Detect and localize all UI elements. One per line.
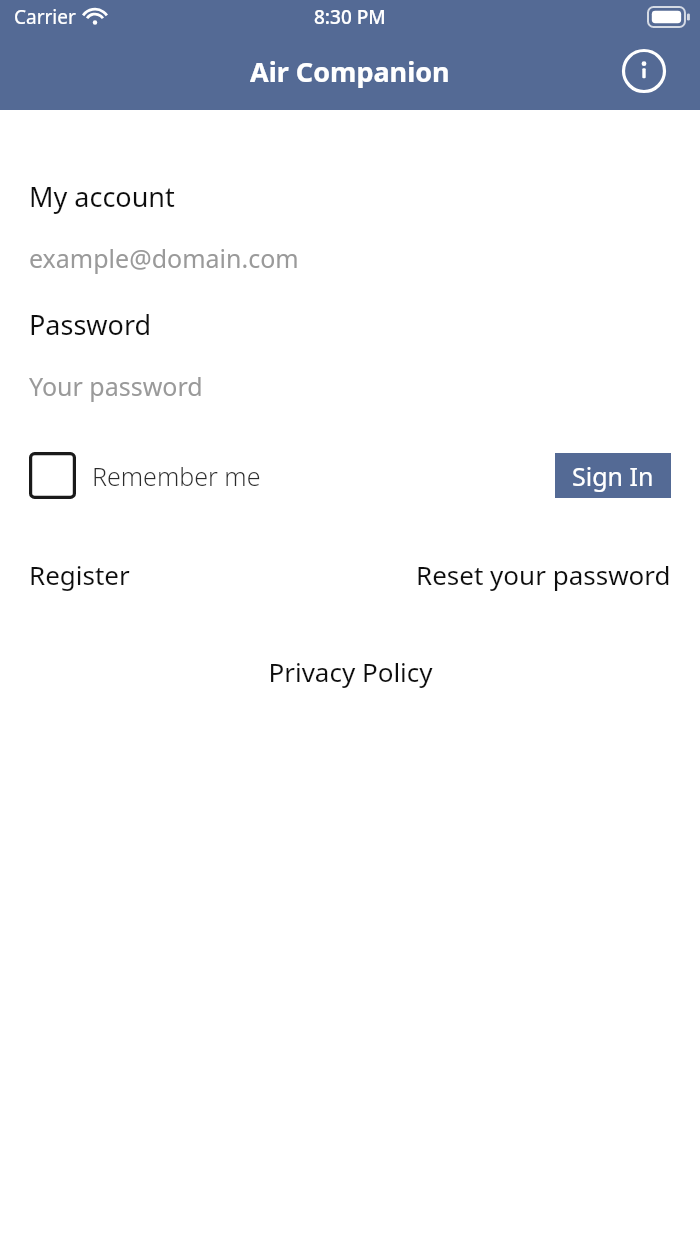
button[interactable]: Your password: [29, 369, 671, 403]
staticText: Air Companion: [250, 53, 450, 90]
button[interactable]: Register: [29, 557, 130, 592]
button[interactable]: Sign In: [555, 453, 671, 498]
button[interactable]: Information: [621, 48, 667, 94]
button[interactable]: example@domain.com: [29, 241, 671, 275]
staticText: Password: [29, 306, 152, 343]
button[interactable]: My account: [29, 178, 175, 215]
staticText: Sign In: [572, 459, 654, 493]
button[interactable]: Privacy Policy: [268, 654, 433, 689]
staticText: Carrier: [14, 4, 76, 30]
staticText: Remember me: [92, 459, 261, 493]
staticText: 8:30 PM: [314, 4, 386, 30]
button[interactable]: Remember me: [29, 452, 261, 499]
button[interactable]: Reset your password: [416, 557, 671, 592]
